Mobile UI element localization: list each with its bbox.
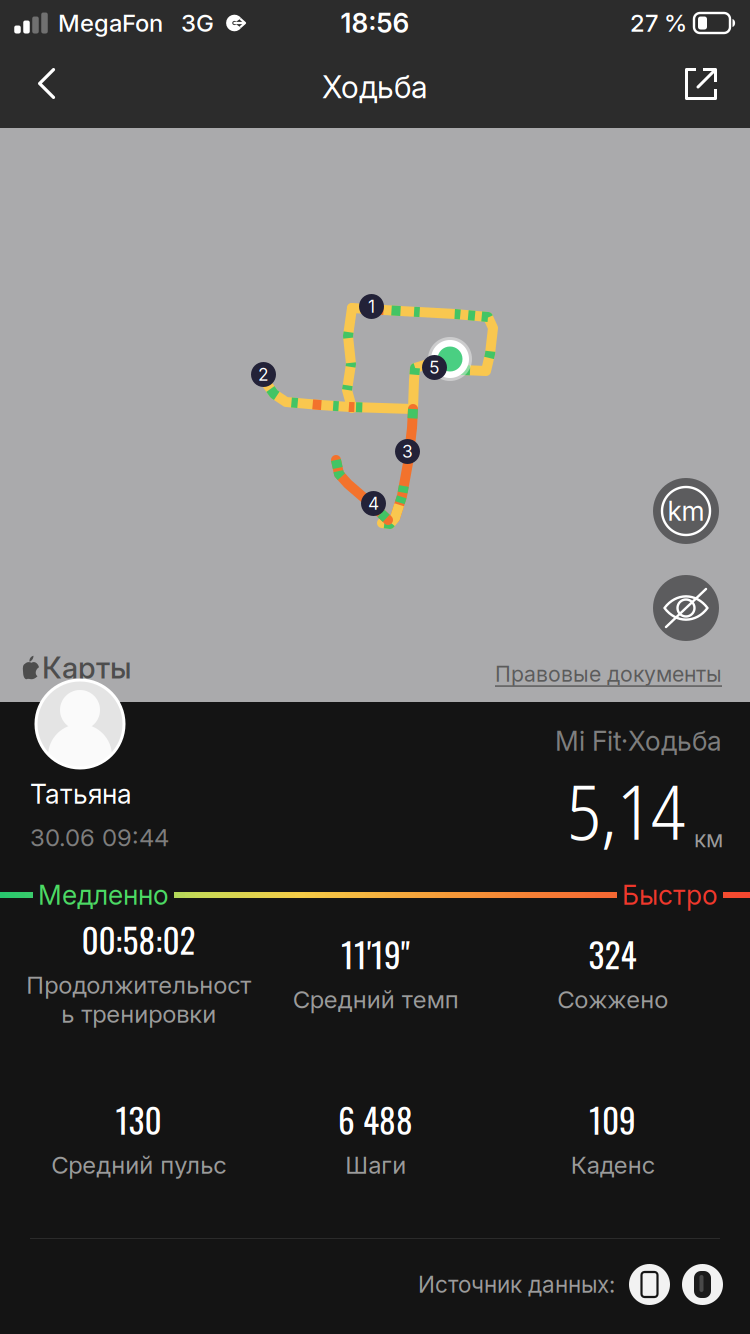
staticText: Медленно: [38, 879, 169, 911]
button[interactable]: Скрыть трек: [653, 575, 719, 641]
staticText: Источник данных:: [418, 1271, 615, 1298]
staticText: km: [667, 495, 704, 527]
staticText: Ходьба: [322, 68, 428, 105]
button[interactable]: Правовые документы: [495, 661, 722, 687]
staticText: 18:56: [340, 7, 409, 39]
button[interactable]: Единицы измерения: [653, 478, 719, 544]
staticText: Карты: [42, 650, 132, 685]
staticText: Mi Fit·Ходьба: [555, 725, 722, 757]
staticText: 109: [589, 1095, 636, 1144]
staticText: Средний пульс: [51, 1150, 226, 1179]
staticText: Татьяна: [30, 778, 132, 810]
staticText: Быстро: [622, 879, 718, 911]
staticText: 11'19": [341, 929, 410, 979]
staticText: 00:58:02: [81, 915, 195, 964]
staticText: Средний темп: [292, 985, 458, 1014]
staticText: 3G: [181, 8, 214, 37]
staticText: 1: [368, 296, 375, 317]
staticText: MegaFon: [58, 8, 163, 37]
staticText: 5: [429, 357, 440, 378]
staticText: км: [694, 825, 723, 853]
staticText: 324: [588, 929, 636, 979]
staticText: 2: [258, 364, 269, 385]
staticText: 4: [368, 493, 379, 514]
staticText: Продолжительност ь тренировки: [26, 970, 251, 1028]
button[interactable]: Поделиться: [663, 48, 739, 120]
staticText: 130: [115, 1095, 161, 1144]
button[interactable]: Назад: [14, 48, 79, 119]
staticText: 5,14: [567, 760, 685, 862]
staticText: Шаги: [345, 1150, 406, 1179]
staticText: 3: [402, 441, 413, 462]
staticText: 30.06 09:44: [30, 823, 169, 852]
staticText: 27 %: [630, 8, 687, 37]
staticText: Сожжено: [557, 985, 668, 1014]
staticText: Правовые документы: [495, 661, 722, 687]
staticText: 6 488: [338, 1095, 413, 1144]
staticText: Каденс: [570, 1150, 654, 1179]
